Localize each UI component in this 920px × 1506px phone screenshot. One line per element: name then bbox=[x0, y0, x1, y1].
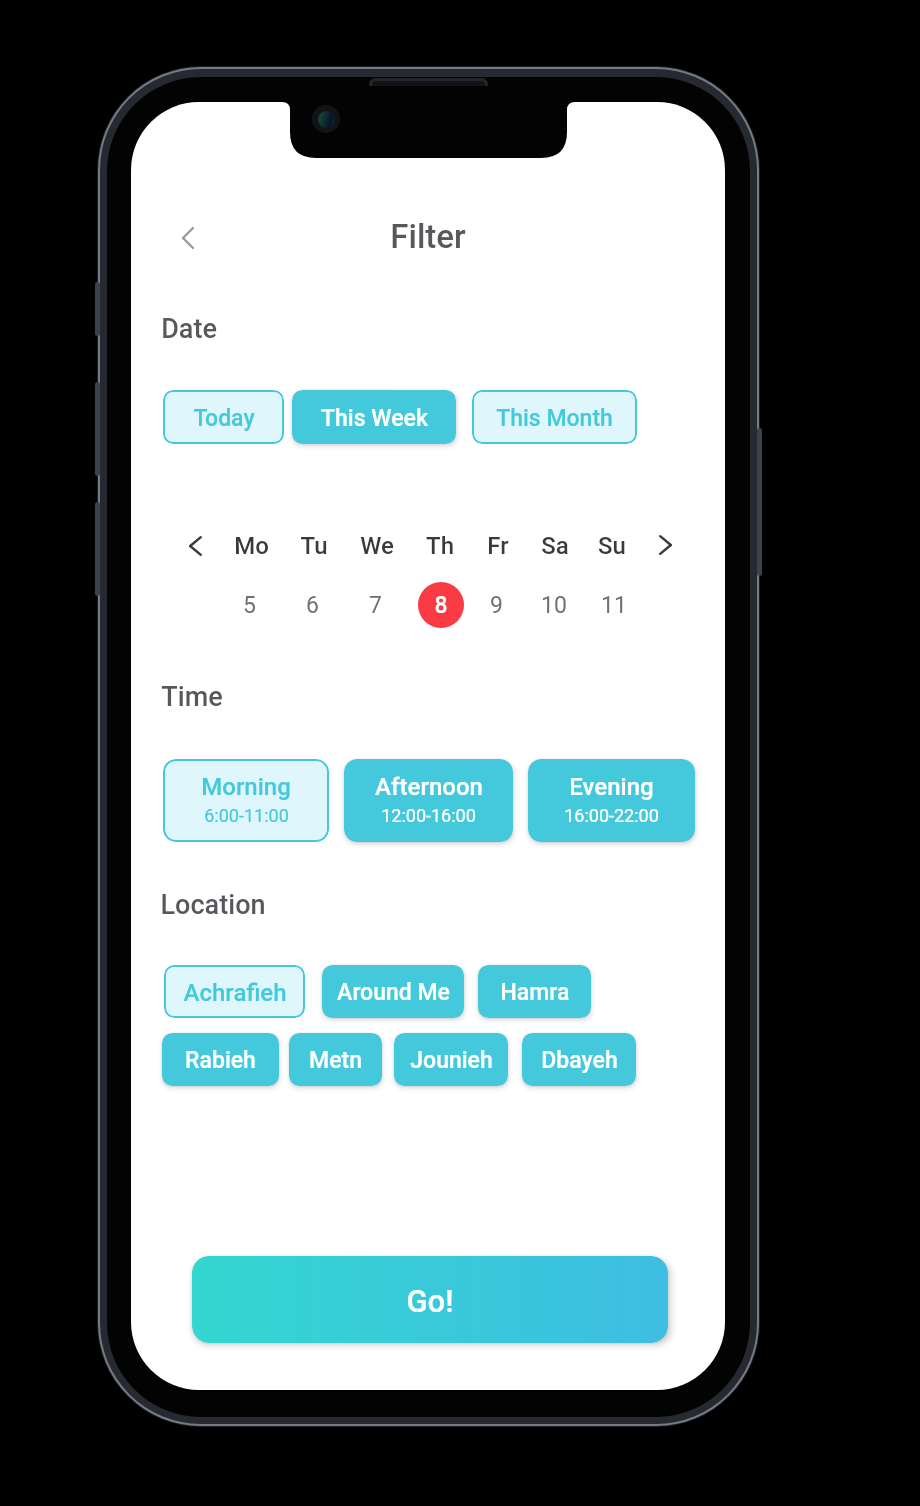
staticText: Su bbox=[598, 532, 626, 560]
staticText: Today bbox=[193, 405, 255, 432]
staticText: Achrafieh bbox=[183, 979, 287, 1007]
staticText: Th bbox=[426, 532, 454, 560]
staticText: Around Me bbox=[337, 979, 450, 1006]
button[interactable]: Hamra bbox=[478, 965, 591, 1018]
staticText: 6 bbox=[306, 592, 319, 619]
staticText: 6:00-11:00 bbox=[204, 805, 289, 826]
staticText: Time bbox=[161, 681, 223, 713]
staticText: 12:00-16:00 bbox=[381, 805, 476, 826]
button[interactable]: Go! bbox=[192, 1256, 668, 1343]
staticText: 9 bbox=[490, 592, 503, 619]
staticText: We bbox=[360, 532, 394, 560]
staticText: Tu bbox=[300, 532, 328, 560]
button[interactable]: Dbayeh bbox=[522, 1033, 636, 1086]
staticText: Metn bbox=[309, 1047, 362, 1074]
button[interactable]: Next week bbox=[645, 525, 685, 565]
staticText: This Week bbox=[321, 405, 428, 432]
staticText: 16:00-22:00 bbox=[564, 805, 659, 826]
button[interactable]: This Month bbox=[472, 390, 637, 444]
staticText: Location bbox=[160, 889, 266, 921]
button[interactable]: Back bbox=[160, 210, 216, 266]
staticText: Go! bbox=[406, 1283, 454, 1319]
staticText: 8 bbox=[434, 592, 448, 619]
button[interactable]: Morning bbox=[163, 759, 329, 842]
staticText: Hamra bbox=[500, 979, 570, 1006]
staticText: Morning bbox=[201, 773, 291, 801]
staticText: 5 bbox=[243, 592, 256, 619]
staticText: 11 bbox=[601, 592, 627, 619]
button[interactable]: Around Me bbox=[322, 965, 464, 1018]
staticText: Rabieh bbox=[185, 1047, 256, 1074]
staticText: Date bbox=[161, 313, 217, 345]
button[interactable]: Jounieh bbox=[394, 1033, 508, 1086]
staticText: Fr bbox=[487, 532, 509, 560]
button[interactable]: Previous week bbox=[175, 526, 215, 566]
staticText: Dbayeh bbox=[541, 1047, 618, 1074]
staticText: Sa bbox=[541, 532, 569, 560]
staticText: Afternoon bbox=[375, 773, 483, 801]
button[interactable]: Today bbox=[163, 390, 284, 444]
button[interactable]: Evening bbox=[528, 759, 695, 842]
staticText: 10 bbox=[541, 592, 567, 619]
button[interactable]: 8 bbox=[418, 582, 464, 628]
staticText: Jounieh bbox=[410, 1047, 493, 1074]
button[interactable]: This Week bbox=[292, 390, 456, 444]
staticText: 7 bbox=[369, 592, 382, 619]
staticText: Evening bbox=[569, 773, 654, 801]
button[interactable]: Achrafieh bbox=[164, 965, 305, 1018]
button[interactable]: Afternoon bbox=[344, 759, 513, 842]
staticText: Filter bbox=[390, 217, 466, 256]
button[interactable]: Metn bbox=[289, 1033, 382, 1086]
staticText: This Month bbox=[496, 405, 613, 432]
button[interactable]: Rabieh bbox=[162, 1033, 279, 1086]
staticText: Mo bbox=[234, 532, 269, 560]
